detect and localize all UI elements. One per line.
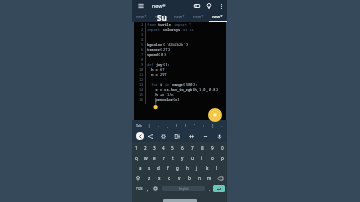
button[interactable]: q: [132, 153, 141, 163]
button[interactable]: Settings: [157, 130, 170, 142]
button[interactable]: 4: [159, 143, 168, 153]
button[interactable]: f: [163, 163, 172, 173]
button[interactable]: p: [217, 153, 227, 163]
button[interactable]: e: [150, 153, 159, 163]
button[interactable]: l: [212, 163, 222, 173]
button[interactable]: new*: [170, 11, 189, 22]
button[interactable]: Undo: [136, 132, 144, 140]
staticText: f: [167, 165, 169, 171]
staticText: Su: [157, 12, 167, 23]
button[interactable]: .: [207, 184, 213, 193]
button[interactable]: 7: [187, 143, 197, 153]
button[interactable]: ): [181, 120, 190, 130]
button[interactable]: :: [199, 120, 208, 130]
button[interactable]: i: [197, 153, 207, 163]
staticText: 6: [181, 145, 184, 151]
button[interactable]: Open file: [170, 130, 184, 142]
button[interactable]: 1: [132, 143, 141, 153]
staticText: i: [160, 82, 165, 87]
staticText: 5: [141, 42, 144, 47]
button[interactable]: m: [204, 173, 214, 183]
staticText: colorsys: [163, 27, 183, 32]
button[interactable]: Share: [144, 130, 157, 142]
staticText: ': [194, 123, 195, 128]
staticText: (: [163, 42, 166, 47]
staticText: [: [212, 123, 214, 128]
button[interactable]: [: [208, 120, 217, 130]
button[interactable]: t: [168, 153, 177, 163]
button[interactable]: y: [177, 153, 187, 163]
button[interactable]: x: [154, 173, 164, 183]
button[interactable]: u: [187, 153, 197, 163]
button[interactable]: Format: [184, 130, 198, 142]
button[interactable]: c: [164, 173, 174, 183]
staticText: .: [209, 186, 211, 192]
staticText: 3: [141, 32, 144, 37]
button[interactable]: Navigation menu: [136, 1, 145, 10]
button[interactable]: a: [136, 163, 145, 173]
button[interactable]: English: [162, 186, 205, 191]
button[interactable]: ,: [144, 184, 151, 193]
button[interactable]: h: [182, 163, 192, 173]
button[interactable]: Run: [208, 108, 222, 122]
button[interactable]: More options: [216, 1, 226, 11]
staticText: ):: [193, 82, 198, 87]
staticText: r: [163, 155, 165, 161]
button[interactable]: s: [145, 163, 154, 173]
button[interactable]: j: [192, 163, 202, 173]
button[interactable]: 5: [168, 143, 177, 153]
button[interactable]: new*: [132, 11, 151, 22]
button[interactable]: 2: [141, 143, 150, 153]
button[interactable]: ?123: [134, 184, 144, 193]
button[interactable]: |: [145, 120, 154, 130]
button[interactable]: 8: [197, 143, 207, 153]
button[interactable]: Voice input: [212, 130, 226, 142]
button[interactable]: Tab: [132, 120, 145, 130]
button[interactable]: Tips: [204, 1, 214, 11]
staticText: (: [160, 47, 163, 52]
button[interactable]: new*: [189, 11, 208, 22]
staticText: 27: [163, 47, 168, 52]
button[interactable]: 6: [177, 143, 187, 153]
staticText: y: [181, 155, 184, 161]
button[interactable]: r: [159, 153, 168, 163]
staticText: .: [158, 123, 160, 128]
staticText: 7: [191, 145, 194, 151]
staticText: l: [216, 165, 218, 171]
staticText: ():: [163, 62, 170, 67]
button[interactable]: z: [144, 173, 154, 183]
button[interactable]: 3: [150, 143, 159, 153]
staticText: c: [168, 175, 171, 181]
button[interactable]: 9: [207, 143, 217, 153]
button[interactable]: .: [154, 120, 163, 130]
button[interactable]: o: [207, 153, 217, 163]
button[interactable]: ': [190, 120, 199, 130]
button[interactable]: 0: [217, 143, 227, 153]
staticText: k: [206, 165, 209, 171]
staticText: 9: [141, 62, 144, 67]
button[interactable]: Shift: [132, 173, 144, 183]
button[interactable]: new*: [151, 11, 170, 22]
staticText: 4: [141, 37, 144, 42]
button[interactable]: w: [141, 153, 150, 163]
button[interactable]: n: [194, 173, 204, 183]
button[interactable]: v: [174, 173, 184, 183]
button[interactable]: b: [184, 173, 194, 183]
button[interactable]: k: [202, 163, 212, 173]
button[interactable]: Console: [192, 1, 202, 11]
staticText: ,: [147, 186, 149, 192]
button[interactable]: Switch keyboard: [151, 184, 160, 193]
button[interactable]: (: [172, 120, 181, 130]
button[interactable]: new*: [208, 11, 227, 22]
button[interactable]: ,: [163, 120, 172, 130]
staticText: 0: [221, 145, 224, 151]
button[interactable]: Enter: [213, 185, 225, 192]
button[interactable]: Minimize: [198, 130, 212, 142]
button[interactable]: Backspace: [214, 173, 227, 183]
button[interactable]: d: [154, 163, 163, 173]
button[interactable]: -: [217, 120, 226, 130]
staticText: 2: [141, 27, 144, 32]
staticText: ): [185, 123, 187, 128]
button[interactable]: g: [172, 163, 182, 173]
staticText: pencolor: [147, 97, 173, 102]
